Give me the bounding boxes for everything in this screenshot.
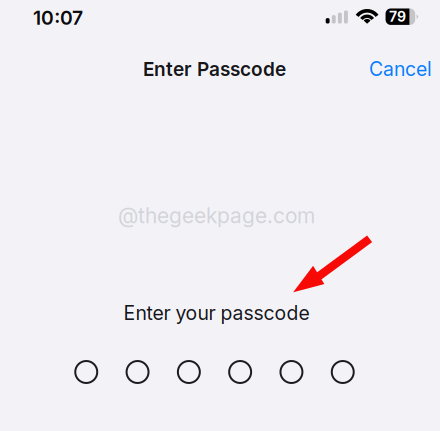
button[interactable]: Cancel bbox=[352, 52, 440, 86]
staticText: Enter your passcode bbox=[123, 301, 309, 325]
staticText: @thegeekpage.com bbox=[118, 203, 315, 228]
staticText: 10:07 bbox=[33, 6, 83, 29]
staticText: Enter Passcode bbox=[143, 57, 286, 80]
staticText: Cancel bbox=[369, 57, 432, 81]
staticText: 79 bbox=[389, 8, 406, 25]
